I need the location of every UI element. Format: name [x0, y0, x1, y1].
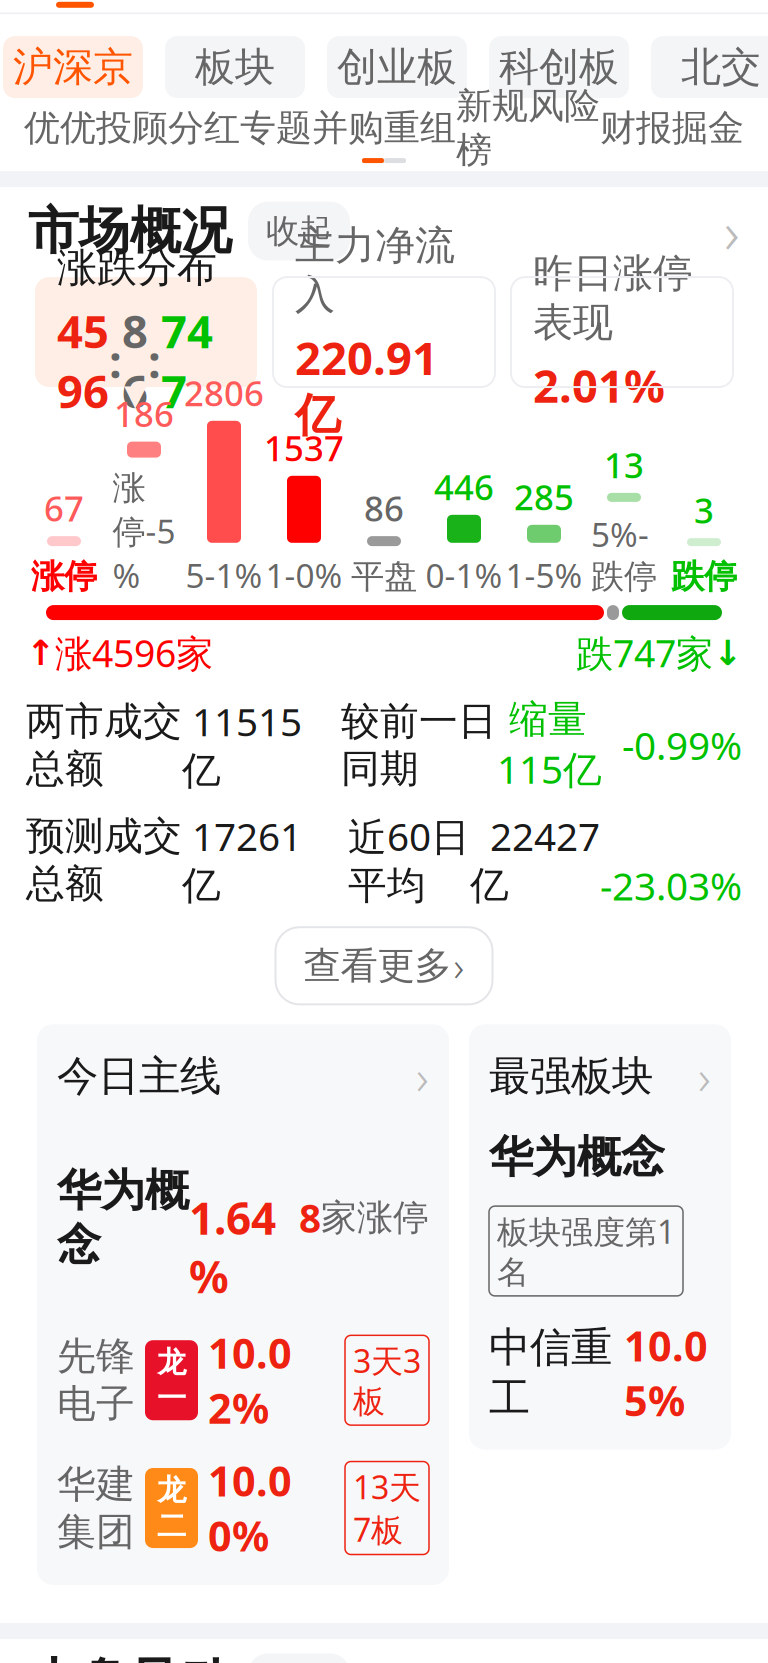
button[interactable]: 板块 — [165, 36, 305, 98]
staticText: 67 — [44, 485, 84, 531]
staticText: 10.00% — [208, 1453, 292, 1563]
staticText: 新规风险榜 — [456, 84, 600, 172]
button[interactable]: 大盘异动 — [0, 1639, 768, 1663]
staticText: 主力净流入 — [295, 221, 455, 319]
staticText: 10.05% — [624, 1318, 708, 1428]
button[interactable]: 涨跌分布 — [35, 277, 257, 387]
staticText: 涨停 — [31, 556, 97, 597]
staticText: 中信重工 — [489, 1322, 612, 1423]
staticText: 13 — [604, 442, 644, 488]
button[interactable]: 分红专题 — [168, 104, 312, 152]
staticText: 今日主线 — [57, 1051, 221, 1102]
button[interactable]: 沪深京 — [3, 36, 143, 98]
staticText: 285 — [514, 474, 574, 520]
staticText: 最强板块 — [489, 1051, 653, 1102]
staticText: 两市成交总额 — [26, 698, 182, 793]
staticText: 3天3板 — [353, 1339, 421, 1421]
staticText: ▼ — [124, 378, 147, 412]
staticText: 446 — [434, 464, 494, 510]
staticText: 分红专题 — [168, 106, 312, 150]
staticText: › — [453, 939, 464, 992]
staticText: 板块强度第1名 — [497, 1210, 675, 1292]
staticText: 沪深京 — [13, 42, 133, 92]
staticText: 17261亿 — [182, 810, 302, 909]
button[interactable]: 财报掘金 — [600, 104, 744, 152]
staticText: 11515亿 — [182, 696, 302, 794]
staticText: 收起 — [266, 211, 332, 251]
staticText: 220.91亿 — [295, 327, 438, 443]
staticText: 优优投顾 — [24, 106, 168, 150]
staticText: › — [416, 1044, 429, 1108]
staticText: 华建集团 — [57, 1460, 135, 1555]
staticText: 186 — [114, 391, 174, 437]
staticText: 5%-跌停 — [591, 512, 657, 597]
staticText: 龙一 — [157, 1344, 186, 1416]
staticText: 财报掘金 — [600, 106, 744, 150]
staticText: 0-1% — [425, 553, 502, 597]
staticText: 北交 — [681, 42, 761, 92]
button[interactable]: 今日主线 — [37, 1024, 449, 1585]
staticText: 涨跌分布 — [57, 243, 217, 292]
button[interactable]: A股 — [27, 0, 123, 13]
staticText: : — [148, 331, 161, 391]
button[interactable]: 昨日涨停表现 — [511, 277, 733, 387]
staticText: 并购重组 — [312, 106, 456, 150]
staticText: 科创板 — [499, 42, 619, 92]
staticText: 先锋电子 — [57, 1333, 135, 1428]
staticText: 4596 — [57, 300, 109, 421]
staticText: 华为概念 — [57, 1164, 189, 1272]
staticText: 近60日平均 — [348, 810, 470, 909]
staticText: 跌停 — [671, 556, 737, 597]
staticText: 2806 — [184, 370, 264, 416]
staticText: ↓ — [713, 633, 742, 672]
button[interactable]: 主力净流入 — [273, 277, 495, 387]
staticText: › — [724, 192, 740, 270]
staticText: : — [109, 331, 122, 391]
button[interactable]: 科创板 — [489, 36, 629, 98]
button[interactable]: 北交 — [651, 36, 768, 98]
button[interactable]: 查看更多 — [275, 927, 492, 1004]
staticText: 1.64% — [189, 1130, 276, 1305]
staticText: 86 — [122, 300, 148, 421]
staticText: 1537 — [264, 425, 344, 471]
staticText: 涨4596家 — [55, 628, 213, 678]
staticText: 平盘 — [351, 556, 417, 597]
staticText: -23.03% — [600, 808, 742, 911]
staticText: 1-0% — [265, 553, 342, 597]
staticText: 华为概念 — [489, 1130, 665, 1184]
button[interactable]: 最强板块 — [469, 1024, 731, 1450]
staticText: 跌747家 — [576, 628, 713, 678]
staticText: 龙二 — [157, 1472, 186, 1544]
staticText: 86 — [364, 485, 404, 531]
staticText: 缩量115亿 — [497, 696, 602, 794]
staticText: 2.01% — [533, 355, 665, 415]
staticText: 较前一日同期 — [341, 698, 497, 793]
staticText: 3 — [694, 487, 714, 533]
button[interactable]: 新规风险榜 — [456, 104, 600, 152]
staticText: 板块 — [195, 42, 275, 92]
button[interactable]: 优优投顾 — [24, 104, 168, 152]
staticText: 13天7板 — [353, 1465, 421, 1550]
staticText: 747 — [161, 300, 213, 421]
staticText: 10.02% — [208, 1325, 292, 1435]
staticText: 预测成交总额 — [26, 812, 182, 907]
button[interactable]: 并购重组 — [312, 104, 456, 152]
staticText: 大盘异动 — [28, 1652, 232, 1663]
button[interactable]: 创业板 — [327, 36, 467, 98]
staticText: 1-5% — [505, 553, 582, 597]
staticText: 昨日涨停表现 — [533, 249, 693, 347]
staticText: 市场概况 — [28, 200, 232, 262]
staticText: -0.99% — [602, 719, 742, 771]
staticText: 查看更多 — [303, 943, 451, 989]
button[interactable]: 市场概况 — [0, 187, 768, 275]
staticText: 涨停-5% — [112, 468, 175, 597]
